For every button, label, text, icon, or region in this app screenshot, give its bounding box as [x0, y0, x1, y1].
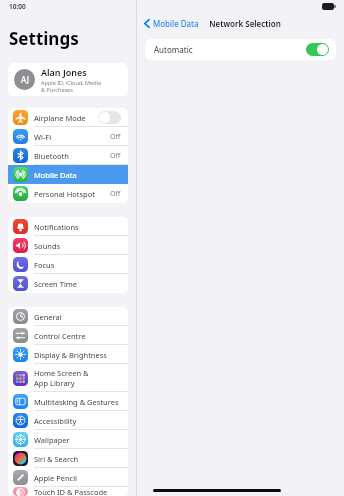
- button[interactable]: Control Centre: [8, 326, 128, 345]
- staticText: Settings: [9, 27, 79, 50]
- staticText: AJ: [21, 74, 29, 85]
- staticText: Notifications: [34, 222, 79, 232]
- staticText: General: [34, 312, 62, 322]
- button[interactable]: Notifications: [8, 217, 128, 236]
- button[interactable]: Personal Hotspot: [8, 184, 128, 203]
- button[interactable]: Automatic toggle, on: [306, 43, 329, 56]
- staticText: Personal Hotspot: [34, 189, 95, 199]
- staticText: Automatic: [154, 44, 306, 55]
- staticText: Display & Brightness: [34, 350, 107, 360]
- button[interactable]: Siri & Search: [8, 449, 128, 468]
- button[interactable]: Wi-Fi: [8, 127, 128, 146]
- staticText: Control Centre: [34, 331, 86, 341]
- button[interactable]: Screen Time: [8, 274, 128, 293]
- staticText: Network Selection: [209, 18, 281, 29]
- button[interactable]: Bluetooth: [8, 146, 128, 165]
- staticText: Wallpaper: [34, 435, 70, 445]
- staticText: Screen Time: [34, 279, 78, 289]
- staticText: Touch ID & Passcode: [34, 487, 108, 496]
- button[interactable]: General: [8, 307, 128, 326]
- button[interactable]: Focus: [8, 255, 128, 274]
- staticText: Mobile Data: [34, 170, 77, 180]
- button[interactable]: Mobile Data: [142, 16, 201, 31]
- button[interactable]: Apple Pencil: [8, 468, 128, 487]
- staticText: Accessibility: [34, 416, 77, 426]
- staticText: Multitasking & Gestures: [34, 397, 119, 407]
- staticText: Focus: [34, 260, 55, 270]
- button[interactable]: Multitasking & Gestures: [8, 392, 128, 411]
- staticText: Apple ID, iCloud, Media: [41, 79, 102, 86]
- button[interactable]: AJ: [8, 63, 128, 96]
- button[interactable]: Accessibility: [8, 411, 128, 430]
- button[interactable]: Home Screen &: [8, 364, 128, 392]
- staticText: Off: [110, 151, 121, 161]
- staticText: Airplane Mode: [34, 113, 86, 123]
- button[interactable]: Display & Brightness: [8, 345, 128, 364]
- staticText: Siri & Search: [34, 454, 79, 464]
- staticText: Apple Pencil: [34, 473, 78, 483]
- staticText: 10:00: [9, 2, 26, 11]
- staticText: Sounds: [34, 241, 61, 251]
- staticText: Off: [110, 132, 121, 142]
- button[interactable]: [98, 111, 121, 124]
- staticText: Alan Jones: [41, 66, 87, 78]
- button[interactable]: Mobile Data: [8, 165, 128, 184]
- button[interactable]: Wallpaper: [8, 430, 128, 449]
- button[interactable]: Airplane Mode: [8, 108, 128, 127]
- staticText: Mobile Data: [153, 18, 199, 29]
- staticText: Home Screen &: [34, 368, 89, 378]
- button[interactable]: Sounds: [8, 236, 128, 255]
- button[interactable]: Touch ID & Passcode: [8, 487, 128, 496]
- staticText: & Purchases: [41, 86, 73, 93]
- staticText: App Library: [34, 378, 75, 388]
- staticText: Wi-Fi: [34, 132, 52, 142]
- staticText: Off: [110, 189, 121, 199]
- staticText: Bluetooth: [34, 151, 69, 161]
- button[interactable]: Automatic: [145, 39, 336, 60]
